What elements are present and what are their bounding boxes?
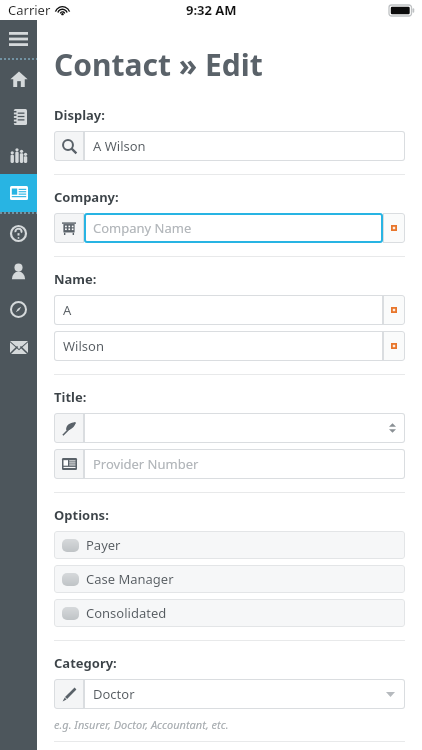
button[interactable]: Journal	[0, 98, 37, 136]
button[interactable]: Contacts	[0, 174, 37, 212]
staticText: Title:	[54, 388, 87, 406]
staticText: Provider Number	[93, 455, 199, 473]
staticText: Display:	[54, 106, 105, 124]
staticText: 9:32 AM	[186, 1, 237, 19]
button[interactable]: People	[0, 136, 37, 174]
button[interactable]: Case Manager	[54, 565, 405, 593]
button[interactable]: Company Name	[54, 213, 405, 243]
staticText: Wilson	[63, 337, 104, 355]
button[interactable]: Payer	[54, 531, 405, 559]
button[interactable]: A	[54, 295, 405, 325]
staticText: Payer	[86, 536, 121, 554]
button[interactable]: Help	[0, 214, 37, 252]
button[interactable]: Provider Number	[54, 449, 405, 479]
staticText: Doctor	[93, 685, 135, 703]
staticText: Name:	[54, 270, 97, 288]
button[interactable]	[54, 413, 405, 443]
staticText: Company:	[54, 188, 119, 206]
staticText: Company Name	[93, 219, 192, 237]
staticText: A Wilson	[93, 137, 146, 155]
button[interactable]: Home	[0, 60, 37, 98]
staticText: Case Manager	[86, 570, 174, 588]
staticText: Contact » Edit	[54, 44, 263, 85]
staticText: Options:	[54, 506, 109, 524]
button[interactable]: Mail	[0, 328, 37, 366]
button[interactable]: Explore	[0, 290, 37, 328]
staticText: A	[63, 301, 72, 319]
staticText: Category:	[54, 654, 117, 672]
button[interactable]: Consolidated	[54, 599, 405, 627]
staticText: Consolidated	[86, 604, 167, 622]
staticText: Carrier	[8, 1, 51, 19]
button[interactable]: A Wilson	[54, 131, 405, 161]
button[interactable]: Wilson	[54, 331, 405, 361]
button[interactable]: Doctor	[54, 679, 405, 709]
staticText: e.g. Insurer, Doctor, Accountant, etc.	[54, 717, 229, 732]
button[interactable]: Menu	[0, 20, 37, 58]
button[interactable]: Profile	[0, 252, 37, 290]
